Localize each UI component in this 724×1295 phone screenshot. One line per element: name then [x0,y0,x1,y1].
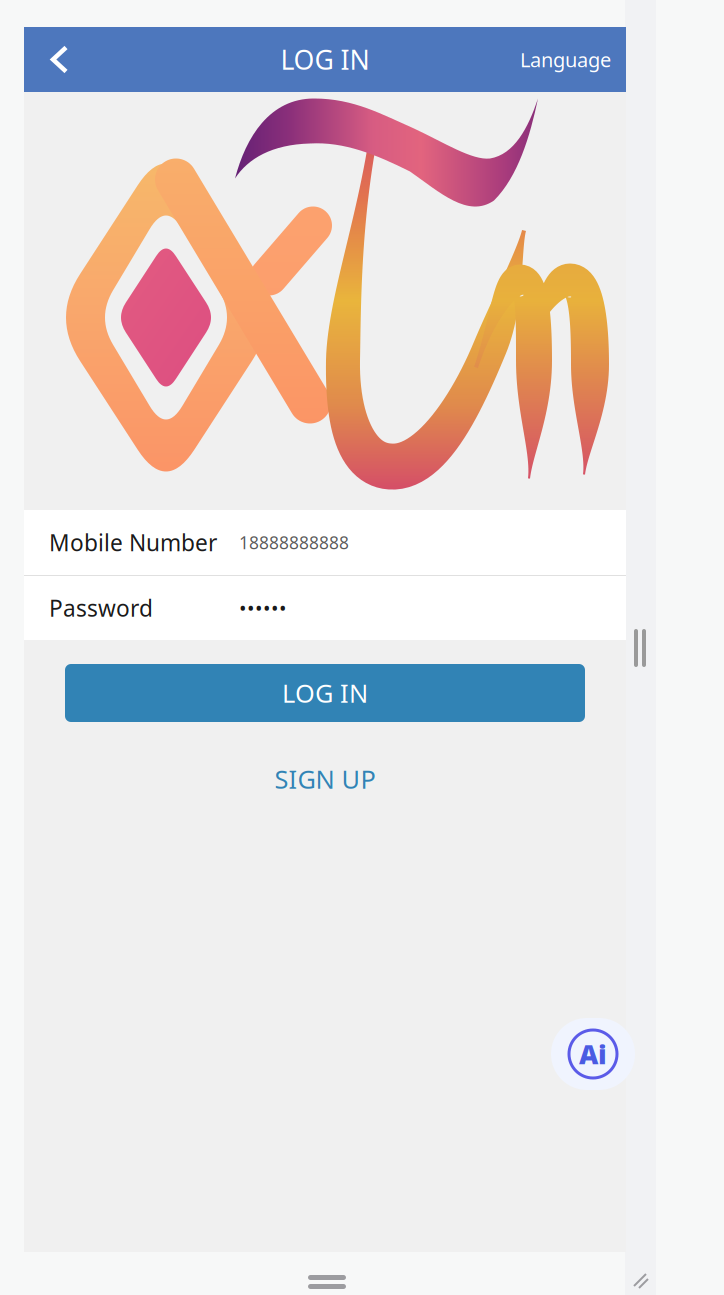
staticText: •••••• [239,595,287,621]
staticText: LOG IN [282,676,368,710]
staticText: SIGN UP [274,762,375,796]
button[interactable]: Language [520,27,626,92]
staticText: 18888888888 [239,531,349,554]
staticText: LOG IN [280,42,369,77]
button[interactable]: Back [24,27,96,92]
button[interactable]: LOG IN [65,664,585,722]
staticText: Mobile Number [49,527,217,557]
staticText: Password [49,593,153,623]
button[interactable]: SIGN UP [225,759,425,799]
staticText: Language [520,46,611,73]
staticText: Ai [579,1036,607,1072]
